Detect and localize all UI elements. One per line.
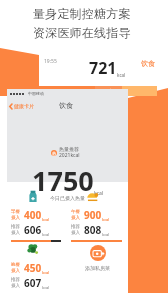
staticText: kcal bbox=[42, 285, 50, 290]
staticText: 健康卡片 bbox=[14, 103, 34, 109]
staticText: 摄入 bbox=[11, 230, 20, 236]
staticText: kcal bbox=[94, 190, 104, 197]
staticText: 饮食 bbox=[59, 101, 73, 110]
staticText: kcal bbox=[42, 232, 50, 237]
staticText: kcal bbox=[102, 217, 110, 222]
staticText: 400 bbox=[24, 208, 42, 222]
staticText: kcal bbox=[42, 217, 50, 222]
staticText: 607 bbox=[24, 276, 42, 290]
button[interactable]: 午餐 bbox=[67, 182, 128, 235]
staticText: 摄入 bbox=[11, 268, 20, 274]
staticText: 摄入 bbox=[71, 215, 80, 221]
staticText: kcal bbox=[42, 270, 50, 275]
staticText: 2021kcal bbox=[59, 152, 80, 159]
staticText: 摄入 bbox=[11, 283, 20, 289]
staticText: 450 bbox=[24, 261, 42, 275]
staticText: 中国移动 bbox=[28, 91, 44, 96]
staticText: 热量推荐 bbox=[59, 146, 79, 152]
staticText: 量身定制控糖方案 bbox=[33, 6, 131, 21]
staticText: 摄入 bbox=[11, 215, 20, 221]
other: 添加私房菜 bbox=[90, 245, 106, 261]
staticText: 推荐 bbox=[11, 277, 20, 283]
staticText: 606 bbox=[24, 223, 42, 237]
staticText: 推荐 bbox=[71, 224, 80, 230]
staticText: kcal bbox=[117, 72, 126, 78]
button[interactable]: 添加私房菜 bbox=[67, 235, 128, 288]
staticText: 19:55 bbox=[44, 58, 57, 65]
staticText: 晚餐 bbox=[11, 262, 20, 268]
button[interactable]: 午餐 bbox=[95, 86, 122, 96]
staticText: 1750 bbox=[32, 162, 94, 199]
staticText: 添加私房菜 bbox=[85, 265, 110, 271]
staticText: 饮食 bbox=[141, 59, 155, 68]
button[interactable]: 早餐 bbox=[7, 182, 67, 235]
staticText: 摄入 bbox=[71, 230, 80, 236]
staticText: 热 bbox=[52, 151, 56, 156]
staticText: 推荐 bbox=[11, 224, 20, 230]
staticText: 午餐 bbox=[104, 88, 114, 94]
staticText: kcal bbox=[102, 232, 110, 237]
button[interactable]: 晚餐 bbox=[7, 235, 67, 288]
staticText: 721 bbox=[89, 57, 117, 79]
staticText: 午餐 bbox=[71, 209, 80, 215]
staticText: 900 bbox=[84, 208, 102, 222]
staticText: 808 bbox=[84, 223, 102, 237]
button[interactable]: 健康卡片 bbox=[7, 100, 38, 112]
staticText: 早餐 bbox=[11, 209, 20, 215]
staticText: 资深医师在线指导 bbox=[33, 25, 131, 40]
staticText: 今日已摄入热量 bbox=[50, 195, 85, 201]
